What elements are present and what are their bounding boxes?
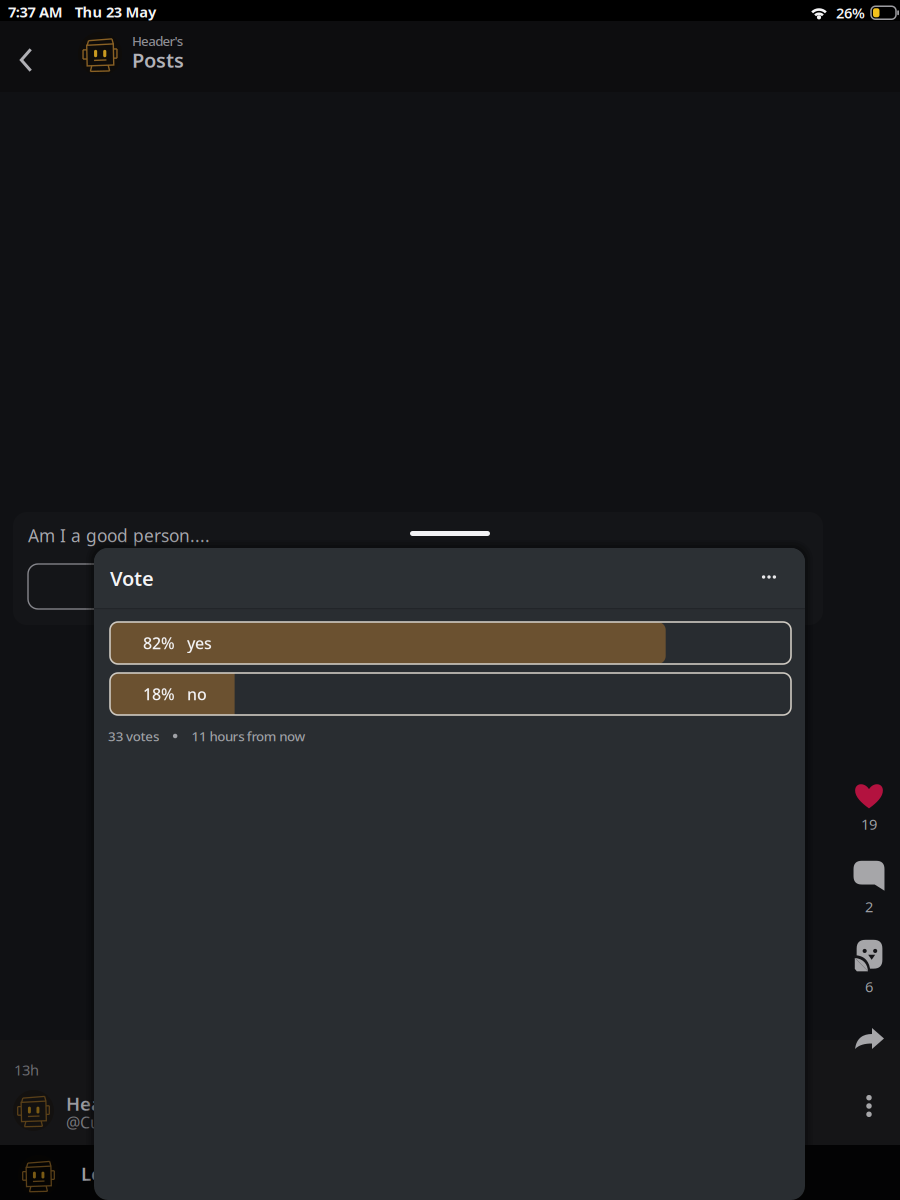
staticText: 18% xyxy=(143,683,175,705)
button[interactable]: 82% xyxy=(110,622,791,664)
staticText: Le xyxy=(81,1161,102,1186)
button[interactable]: Like xyxy=(838,776,900,838)
staticText: 33 votes xyxy=(108,727,159,745)
button[interactable]: 18% xyxy=(110,673,791,715)
staticText: 11 hours from now xyxy=(191,727,306,745)
button[interactable]: More xyxy=(838,1081,900,1131)
staticText: 19 xyxy=(861,814,877,834)
staticText: Thu 23 May xyxy=(75,2,156,21)
button[interactable]: Back xyxy=(0,30,52,90)
staticText: Posts xyxy=(132,47,184,73)
staticText: 13h xyxy=(14,1060,39,1079)
button[interactable]: React xyxy=(838,936,900,998)
staticText: 6 xyxy=(865,977,873,996)
button[interactable]: Comments xyxy=(838,857,900,919)
staticText: 2 xyxy=(865,897,873,916)
button[interactable]: Share xyxy=(838,1014,900,1064)
staticText: Am I a good person.... xyxy=(28,524,210,547)
staticText: 26% xyxy=(836,3,865,22)
staticText: @Cube xyxy=(66,1112,119,1133)
staticText: Header's xyxy=(132,32,183,50)
staticText: 82% xyxy=(143,632,175,654)
button[interactable]: View poll xyxy=(28,564,783,609)
staticText: 7:37 AM xyxy=(8,2,63,21)
staticText: Vote xyxy=(110,565,154,592)
staticText: no xyxy=(187,683,207,705)
button[interactable]: More options xyxy=(743,551,795,603)
staticText: yes xyxy=(187,632,212,654)
staticText: Header's xyxy=(66,1091,147,1116)
